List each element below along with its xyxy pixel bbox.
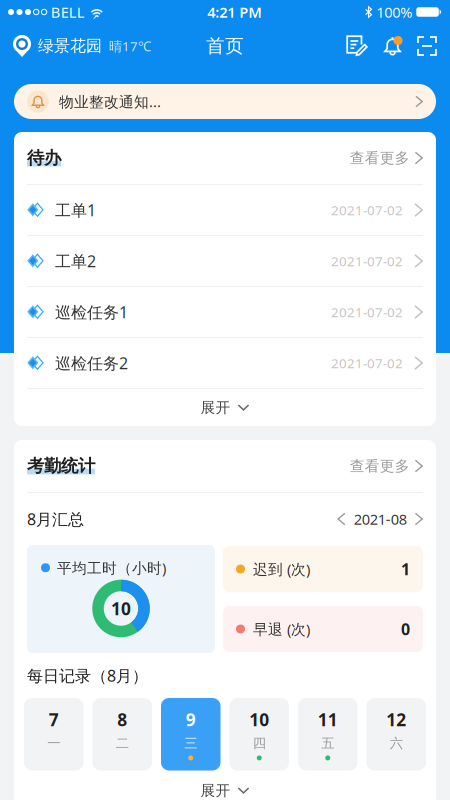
staticText: 查看更多 bbox=[350, 149, 410, 167]
staticText: 11 bbox=[318, 708, 338, 731]
button[interactable]: Next month bbox=[415, 504, 423, 533]
staticText: 工单2 bbox=[55, 250, 96, 272]
button[interactable]: 工单2 bbox=[14, 236, 436, 287]
staticText: 2021-08 bbox=[346, 509, 415, 529]
staticText: 2021-07-02 bbox=[331, 252, 403, 270]
staticText: 早退 (次) bbox=[253, 619, 310, 639]
button[interactable]: 11 bbox=[298, 698, 357, 770]
staticText: 7 bbox=[49, 708, 59, 731]
staticText: 2021-07-02 bbox=[331, 303, 403, 321]
staticText: 五 bbox=[321, 735, 334, 751]
button[interactable]: Scan bbox=[417, 36, 437, 56]
button[interactable]: Previous month bbox=[337, 504, 346, 533]
button[interactable]: 查看更多 bbox=[350, 141, 423, 175]
button[interactable]: 9 bbox=[161, 698, 220, 770]
staticText: 10 bbox=[249, 708, 269, 731]
staticText: 0 bbox=[401, 618, 410, 640]
staticText: 展开 bbox=[200, 398, 230, 416]
staticText: 晴17℃ bbox=[109, 37, 151, 55]
staticText: 100% bbox=[372, 2, 416, 22]
staticText: 一 bbox=[47, 735, 60, 751]
staticText: 考勤统计 bbox=[27, 455, 95, 477]
staticText: 每日记录（8月） bbox=[27, 665, 148, 686]
button[interactable]: Notes bbox=[346, 35, 368, 57]
button[interactable]: 物业整改通知... bbox=[14, 84, 436, 119]
button[interactable]: Notifications bbox=[381, 35, 404, 56]
staticText: 2021-07-02 bbox=[331, 354, 403, 372]
button[interactable]: 展开 bbox=[200, 389, 249, 426]
button[interactable]: 巡检任务1 bbox=[14, 287, 436, 338]
staticText: 迟到 (次) bbox=[253, 559, 310, 579]
staticText: 工单1 bbox=[55, 199, 96, 221]
staticText: 三 bbox=[184, 735, 197, 751]
staticText: 4:21 PM bbox=[207, 2, 262, 22]
button[interactable]: 查看更多 bbox=[350, 449, 423, 483]
staticText: 查看更多 bbox=[350, 457, 410, 475]
button[interactable]: 12 bbox=[366, 698, 426, 770]
staticText: 12 bbox=[386, 708, 406, 731]
staticText: 物业整改通知... bbox=[59, 92, 161, 111]
button[interactable]: 绿景花园 bbox=[13, 35, 151, 57]
staticText: 2021-07-02 bbox=[331, 201, 403, 219]
staticText: 8 bbox=[117, 708, 127, 731]
staticText: 绿景花园 bbox=[38, 36, 102, 56]
staticText: 10 bbox=[111, 597, 131, 620]
staticText: 巡检任务2 bbox=[55, 352, 128, 374]
staticText: 四 bbox=[253, 735, 266, 751]
staticText: BELL bbox=[47, 2, 89, 22]
staticText: 1 bbox=[401, 558, 410, 580]
staticText: 平均工时（小时) bbox=[57, 558, 166, 577]
staticText: 二 bbox=[116, 735, 129, 751]
staticText: 展开 bbox=[200, 781, 230, 799]
button[interactable]: 10 bbox=[229, 698, 289, 770]
staticText: 8月汇总 bbox=[27, 508, 84, 530]
button[interactable]: 工单1 bbox=[14, 185, 436, 236]
staticText: 六 bbox=[390, 735, 403, 751]
button[interactable]: 7 bbox=[24, 698, 83, 770]
button[interactable]: 8 bbox=[92, 698, 152, 770]
staticText: 首页 bbox=[206, 34, 244, 57]
staticText: 巡检任务1 bbox=[55, 301, 128, 323]
button[interactable]: 巡检任务2 bbox=[14, 338, 436, 389]
button[interactable]: 展开 bbox=[200, 770, 249, 800]
staticText: 待办 bbox=[27, 147, 61, 169]
staticText: 9 bbox=[186, 708, 196, 731]
